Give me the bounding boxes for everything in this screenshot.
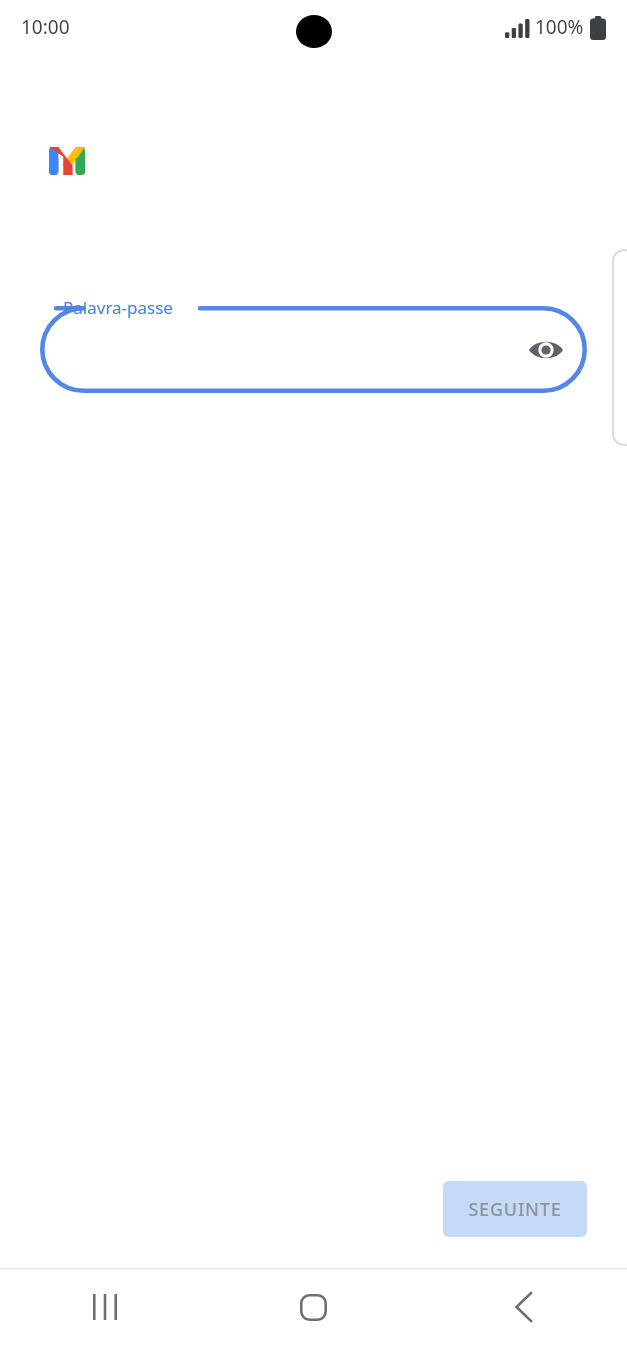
button[interactable]: Recentes — [0, 1268, 209, 1346]
button[interactable]: Mostrar palavra-passe — [40, 306, 587, 393]
button[interactable]: Início — [209, 1268, 418, 1346]
staticText: SEGUINTE — [468, 1197, 562, 1222]
button[interactable]: Voltar — [418, 1268, 627, 1346]
button[interactable]: Mostrar palavra-passe — [521, 325, 571, 375]
staticText: Palavra-passe — [63, 296, 173, 319]
staticText: 100% — [535, 14, 584, 40]
other: Gmail — [49, 147, 85, 175]
button[interactable]: SEGUINTE — [443, 1181, 587, 1237]
staticText: 10:00 — [21, 14, 70, 40]
